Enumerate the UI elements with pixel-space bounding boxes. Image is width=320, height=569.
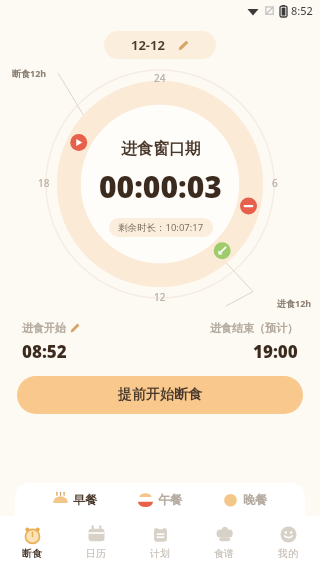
staticText: 晚餐 — [243, 492, 267, 507]
button[interactable]: 提前开始断食 — [17, 376, 303, 414]
staticText: 6 — [272, 176, 278, 190]
staticText: 食谱 — [214, 547, 234, 560]
staticText: 24 — [154, 71, 166, 85]
button[interactable]: 12-12 — [104, 31, 216, 59]
staticText: 18 — [38, 176, 50, 190]
staticText: 进食12h — [277, 297, 312, 309]
other: Edit eating start time — [70, 323, 80, 333]
staticText: 日历 — [86, 547, 106, 560]
staticText: 12 — [154, 290, 166, 304]
staticText: 剩余时长：10:07:17 — [118, 221, 204, 234]
button[interactable]: 我的 — [256, 516, 320, 569]
staticText: 进食窗口期 — [121, 139, 201, 159]
button[interactable]: 晚餐 — [220, 492, 270, 507]
staticText: 00:00:03 — [99, 166, 222, 207]
button[interactable]: 日历 — [64, 516, 128, 569]
button[interactable]: 食谱 — [192, 516, 256, 569]
button[interactable]: 午餐 — [135, 492, 185, 507]
button[interactable]: 早餐 — [50, 492, 100, 507]
staticText: 12-12 — [131, 36, 165, 54]
staticText: 19:00 — [253, 340, 298, 363]
staticText: 08:52 — [22, 340, 67, 363]
other: Edit fasting plan — [178, 40, 189, 51]
staticText: 计划 — [150, 547, 170, 560]
staticText: 进食开始 — [22, 321, 66, 335]
staticText: 我的 — [278, 547, 298, 560]
staticText: 午餐 — [158, 492, 182, 507]
staticText: 8:52 — [291, 3, 313, 18]
staticText: 进食结束（预计） — [210, 321, 298, 335]
staticText: 早餐 — [73, 492, 97, 507]
staticText: 断食 — [22, 547, 42, 560]
staticText: 提前开始断食 — [118, 386, 202, 404]
button[interactable]: 断食 — [0, 516, 64, 569]
button[interactable]: 计划 — [128, 516, 192, 569]
staticText: 断食12h — [12, 67, 47, 79]
